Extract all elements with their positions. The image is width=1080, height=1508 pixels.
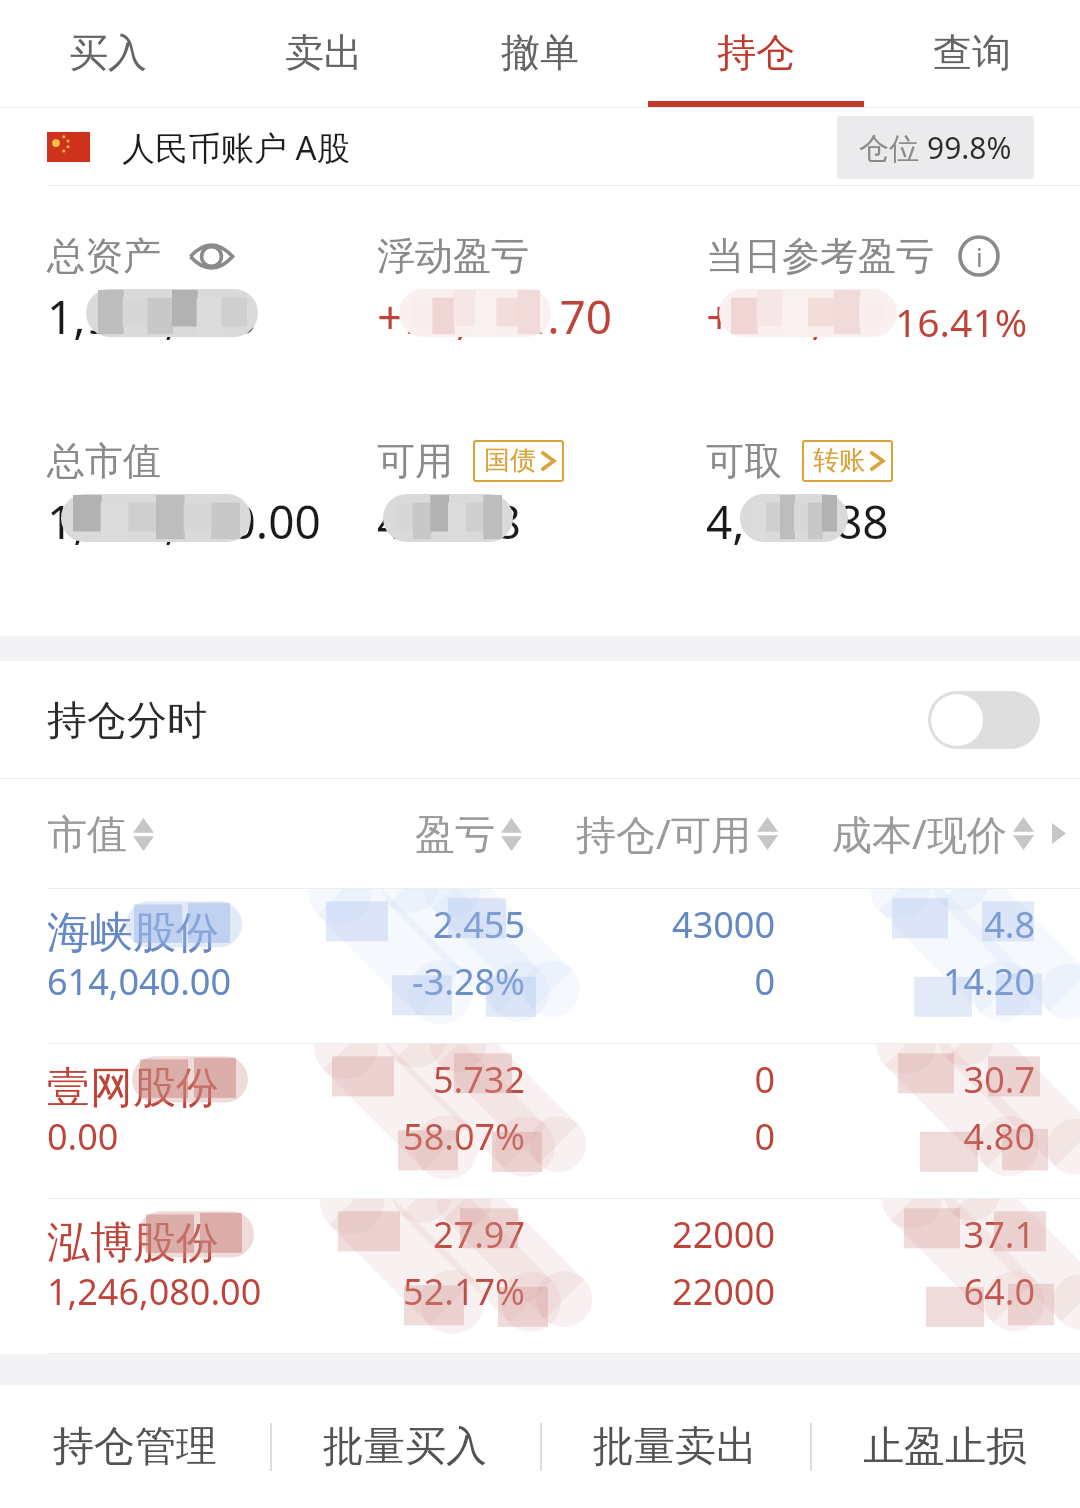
staticText: 37.1 (963, 1210, 1035, 1259)
button[interactable]: 海峡股份 (0, 888, 1080, 1043)
staticText: 批量卖出 (593, 1421, 757, 1473)
staticText: 持仓管理 (53, 1421, 217, 1473)
staticText: 0 (754, 957, 775, 1006)
staticText: 16.41% (895, 295, 1028, 348)
staticText: 海峡股份 (47, 906, 219, 960)
staticText: 总资产 (47, 232, 161, 280)
button[interactable]: 批量卖出 (540, 1385, 810, 1508)
staticText: 可用 (377, 437, 453, 485)
staticText: 22000 (672, 1267, 775, 1316)
button[interactable]: 泓博股份 (0, 1198, 1080, 1353)
staticText: 43000 (672, 900, 775, 949)
button[interactable]: 持仓/可用 (522, 806, 778, 861)
staticText: 0.00 (47, 1112, 119, 1161)
button[interactable]: 成本/现价 (778, 806, 1034, 861)
staticText: 买入 (69, 28, 147, 77)
other: More columns (1052, 823, 1066, 844)
staticText: 2.455 (432, 900, 525, 949)
staticText: +268,9 (706, 285, 850, 348)
staticText: 58.07% (403, 1112, 525, 1161)
button[interactable]: Information (958, 235, 1000, 277)
staticText: 可取 (706, 437, 782, 485)
staticText: 4.8 (984, 900, 1035, 949)
staticText: 0 (754, 1055, 775, 1104)
staticText: 1,246,080.00 (47, 1267, 262, 1316)
staticText: 1,966,428 (47, 285, 256, 348)
staticText: 64.0 (963, 1267, 1035, 1316)
other: Toggle amount visibility (189, 240, 234, 273)
staticText: 持仓分时 (47, 695, 207, 745)
staticText: 仓位 (859, 127, 927, 168)
staticText: 盈亏 (415, 809, 495, 859)
staticText: 成本/现价 (832, 806, 1007, 861)
staticText: 400.88 (377, 490, 521, 553)
staticText: 5.732 (432, 1055, 525, 1104)
button[interactable]: 转账 (802, 440, 893, 482)
button[interactable]: 撤单 (432, 0, 648, 108)
staticText: 持仓 (717, 28, 795, 77)
button[interactable]: 国债 (473, 440, 564, 482)
staticText: 30.7 (963, 1055, 1035, 1104)
staticText: 查询 (933, 28, 1011, 77)
staticText: 浮动盈亏 (377, 232, 529, 280)
staticText: +93,274.70 (377, 285, 613, 348)
staticText: 99.8% (927, 127, 1012, 168)
staticText: i (976, 239, 983, 274)
staticText: 4.80 (963, 1112, 1035, 1161)
button[interactable]: 壹网股份 (0, 1043, 1080, 1198)
staticText: 614,040.00 (47, 957, 232, 1006)
button[interactable]: 买入 (0, 0, 216, 108)
staticText: 撤单 (501, 28, 579, 77)
button[interactable]: 市值 (47, 809, 317, 859)
staticText: -3.28% (412, 957, 525, 1006)
button[interactable]: 持仓管理 (0, 1385, 270, 1508)
staticText: 当日参考盈亏 (706, 232, 934, 280)
staticText: 52.17% (403, 1267, 525, 1316)
staticText: 人民币账户 A股 (122, 125, 350, 170)
staticText: 0 (754, 1112, 775, 1161)
staticText: 卖出 (285, 28, 363, 77)
staticText: 22000 (672, 1210, 775, 1259)
button[interactable]: 卖出 (216, 0, 432, 108)
staticText: 1,960,120.00 (47, 490, 321, 553)
staticText: 壹网股份 (47, 1061, 219, 1115)
staticText: 持仓/可用 (576, 806, 751, 861)
button[interactable]: 批量买入 (270, 1385, 540, 1508)
staticText: 27.97 (432, 1210, 525, 1259)
button[interactable]: 仓位 (837, 116, 1034, 179)
staticText: 14.20 (942, 957, 1035, 1006)
staticText: 止盈止损 (863, 1421, 1027, 1473)
staticText: 市值 (47, 809, 127, 859)
staticText: 泓博股份 (47, 1216, 219, 1270)
button[interactable]: 盈亏 (317, 809, 522, 859)
staticText: 国债 (484, 444, 536, 477)
staticText: 转账 (813, 444, 865, 477)
button[interactable]: Intraday chart toggle (928, 691, 1040, 749)
button[interactable]: 持仓 (648, 0, 864, 108)
staticText: 4,088.88 (706, 490, 889, 553)
button[interactable]: 止盈止损 (810, 1385, 1080, 1508)
staticText: 总市值 (47, 437, 161, 485)
staticText: 批量买入 (323, 1421, 487, 1473)
button[interactable]: 查询 (864, 0, 1080, 108)
